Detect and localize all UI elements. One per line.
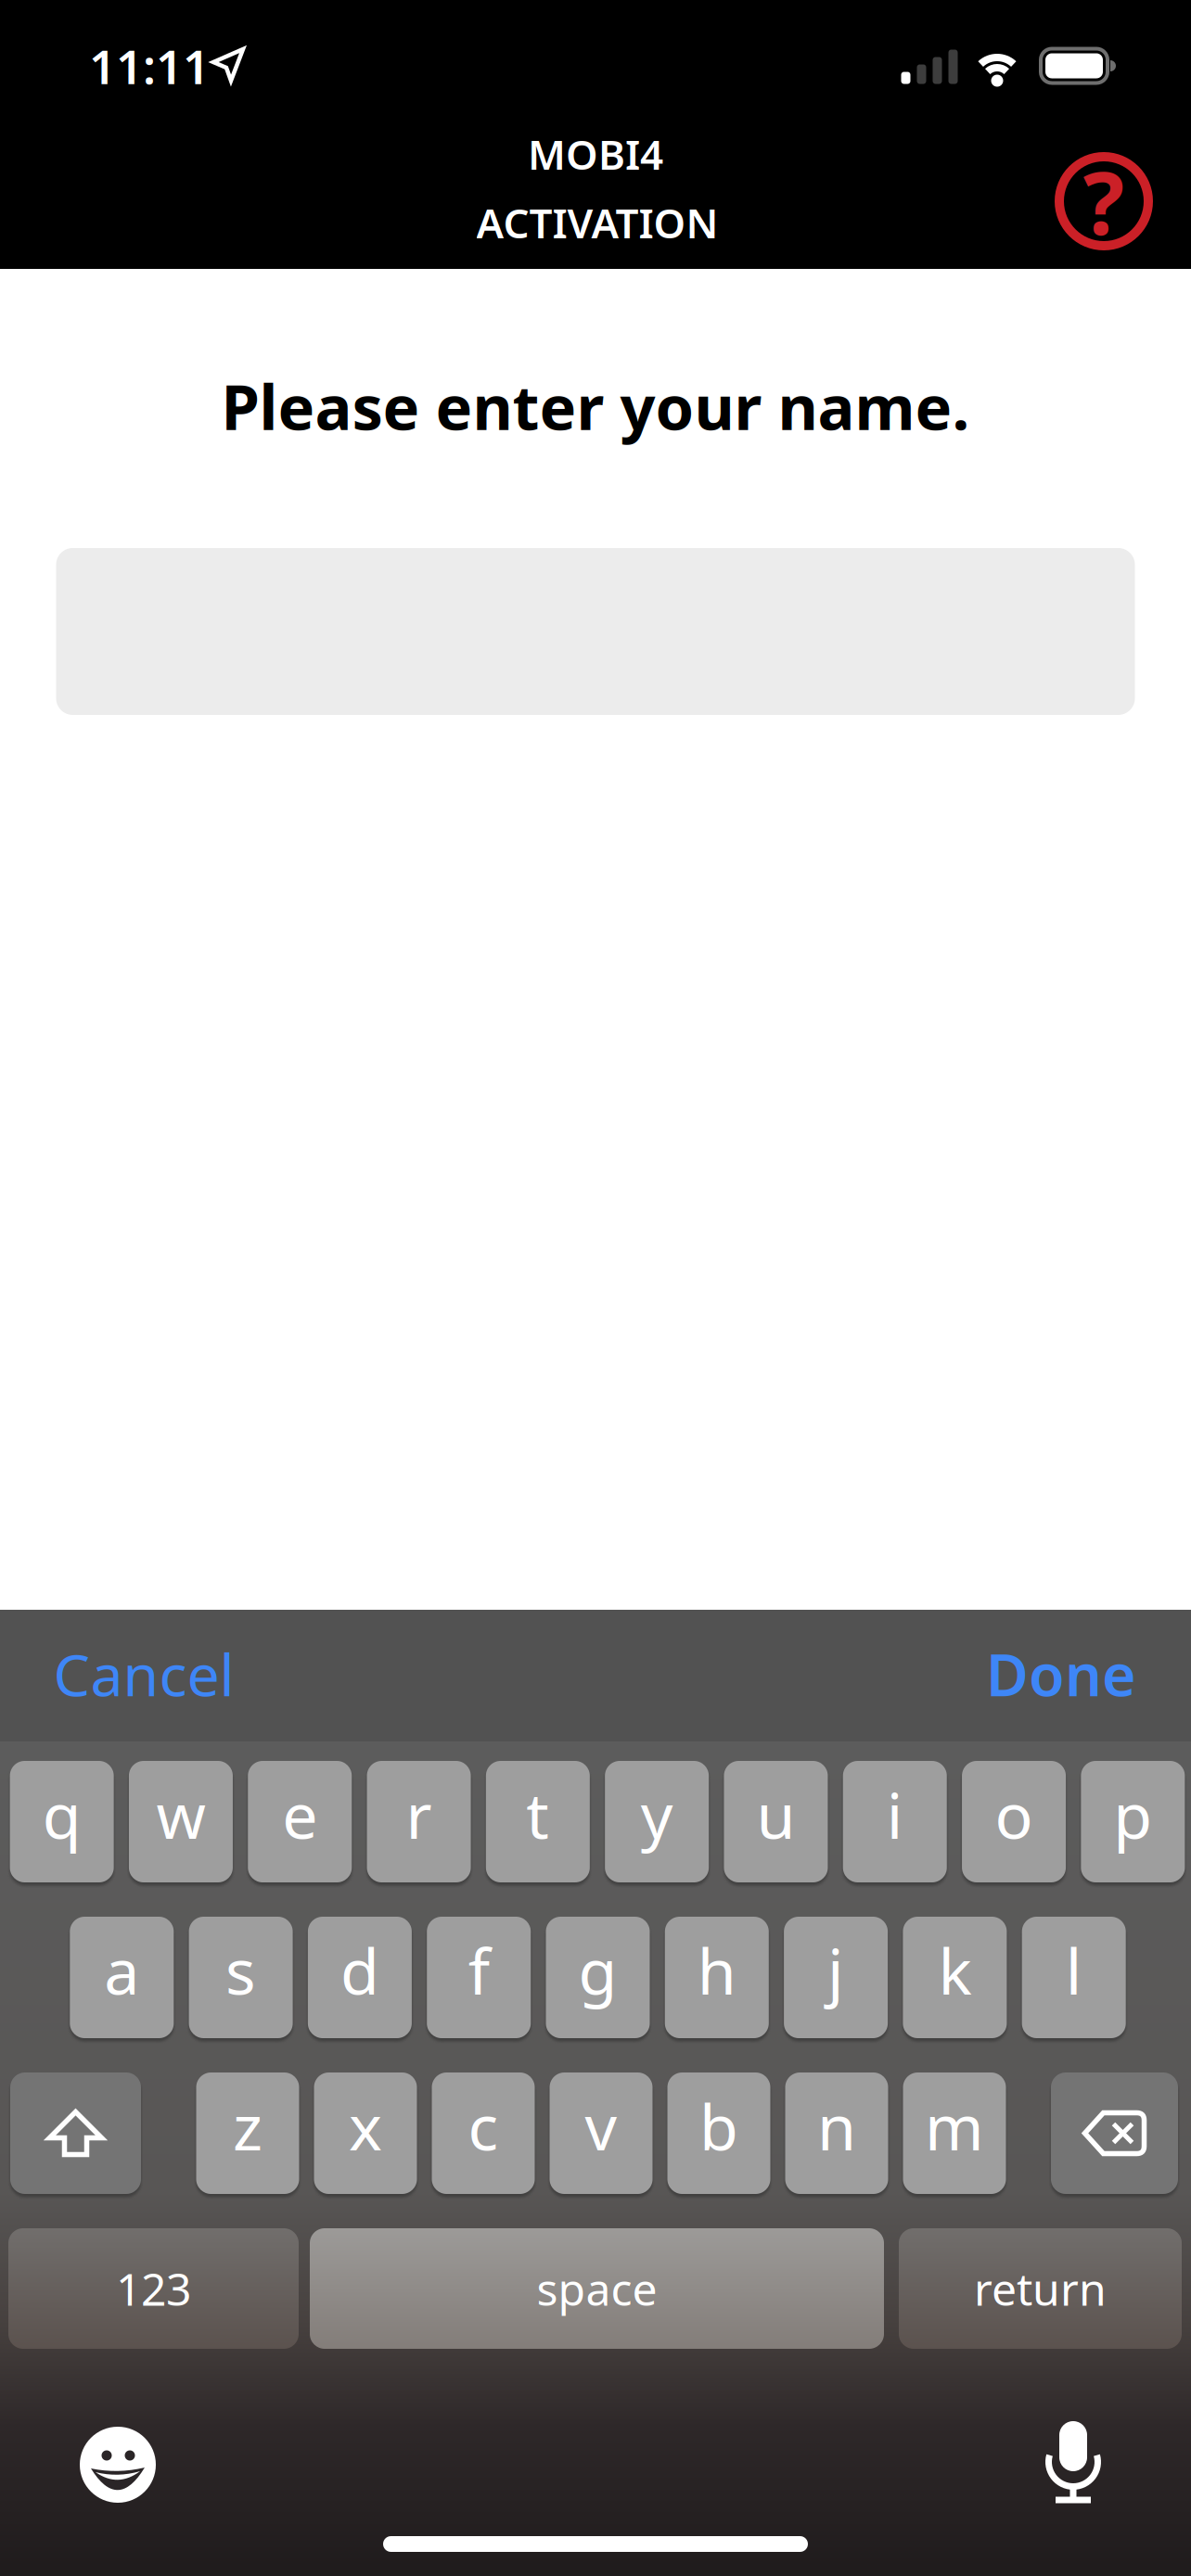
- button[interactable]: f: [427, 1917, 531, 2038]
- staticText: v: [585, 2084, 617, 2168]
- button[interactable]: g: [546, 1917, 650, 2038]
- button[interactable]: m: [903, 2072, 1006, 2194]
- button[interactable]: r: [367, 1761, 471, 1882]
- button[interactable]: i: [843, 1761, 947, 1882]
- staticText: z: [233, 2084, 263, 2168]
- staticText: p: [1113, 1772, 1152, 1856]
- staticText: 11:11: [89, 35, 210, 97]
- button[interactable]: t: [486, 1761, 590, 1882]
- staticText: x: [349, 2084, 382, 2168]
- button[interactable]: k: [903, 1917, 1007, 2038]
- staticText: q: [42, 1772, 81, 1856]
- button[interactable]: e: [248, 1761, 352, 1882]
- button[interactable]: [10, 2072, 141, 2194]
- button[interactable]: space: [310, 2228, 884, 2349]
- button[interactable]: 123: [8, 2228, 299, 2349]
- staticText: y: [641, 1772, 673, 1856]
- staticText: d: [340, 1928, 379, 2012]
- staticText: 123: [116, 2259, 191, 2318]
- staticText: u: [756, 1772, 795, 1856]
- staticText: ACTIVATION: [476, 195, 718, 250]
- button[interactable]: c: [432, 2072, 535, 2194]
- staticText: n: [817, 2084, 856, 2168]
- button[interactable]: n: [785, 2072, 888, 2194]
- button[interactable]: b: [667, 2072, 770, 2194]
- staticText: s: [225, 1928, 256, 2012]
- staticText: Done: [986, 1635, 1136, 1712]
- button[interactable]: [1051, 2072, 1178, 2194]
- staticText: j: [827, 1928, 844, 2012]
- button[interactable]: Cancel: [53, 1635, 234, 1712]
- button[interactable]: o: [962, 1761, 1066, 1882]
- staticText: Please enter your name.: [221, 365, 970, 447]
- staticText: b: [699, 2084, 738, 2168]
- staticText: return: [974, 2259, 1107, 2318]
- button[interactable]: u: [724, 1761, 828, 1882]
- button[interactable]: Done: [986, 1635, 1136, 1712]
- staticText: l: [1065, 1928, 1082, 2012]
- staticText: a: [104, 1928, 139, 2012]
- button[interactable]: d: [308, 1917, 412, 2038]
- staticText: i: [886, 1772, 903, 1856]
- button[interactable]: s: [189, 1917, 293, 2038]
- staticText: MOBI4: [528, 127, 663, 181]
- staticText: g: [578, 1928, 617, 2012]
- button[interactable]: q: [10, 1761, 114, 1882]
- staticText: t: [526, 1772, 549, 1856]
- button[interactable]: [80, 2427, 156, 2503]
- staticText: m: [925, 2084, 984, 2168]
- button[interactable]: ?: [1055, 152, 1153, 250]
- staticText: f: [468, 1928, 489, 2012]
- button[interactable]: j: [784, 1917, 888, 2038]
- staticText: ?: [1083, 144, 1125, 259]
- button[interactable]: x: [314, 2072, 417, 2194]
- button[interactable]: a: [70, 1917, 174, 2038]
- button[interactable]: v: [550, 2072, 653, 2194]
- staticText: r: [406, 1772, 432, 1856]
- button[interactable]: l: [1022, 1917, 1126, 2038]
- staticText: Cancel: [53, 1635, 234, 1712]
- staticText: o: [995, 1772, 1033, 1856]
- button[interactable]: p: [1081, 1761, 1185, 1882]
- button[interactable]: z: [196, 2072, 299, 2194]
- staticText: k: [938, 1928, 972, 2012]
- button[interactable]: y: [605, 1761, 709, 1882]
- staticText: space: [537, 2259, 657, 2318]
- staticText: h: [697, 1928, 736, 2012]
- staticText: c: [468, 2084, 499, 2168]
- button[interactable]: [1046, 2419, 1100, 2505]
- staticText: w: [156, 1772, 205, 1856]
- staticText: e: [282, 1772, 317, 1856]
- button[interactable]: return: [899, 2228, 1182, 2349]
- button[interactable]: w: [129, 1761, 233, 1882]
- button[interactable]: h: [665, 1917, 769, 2038]
